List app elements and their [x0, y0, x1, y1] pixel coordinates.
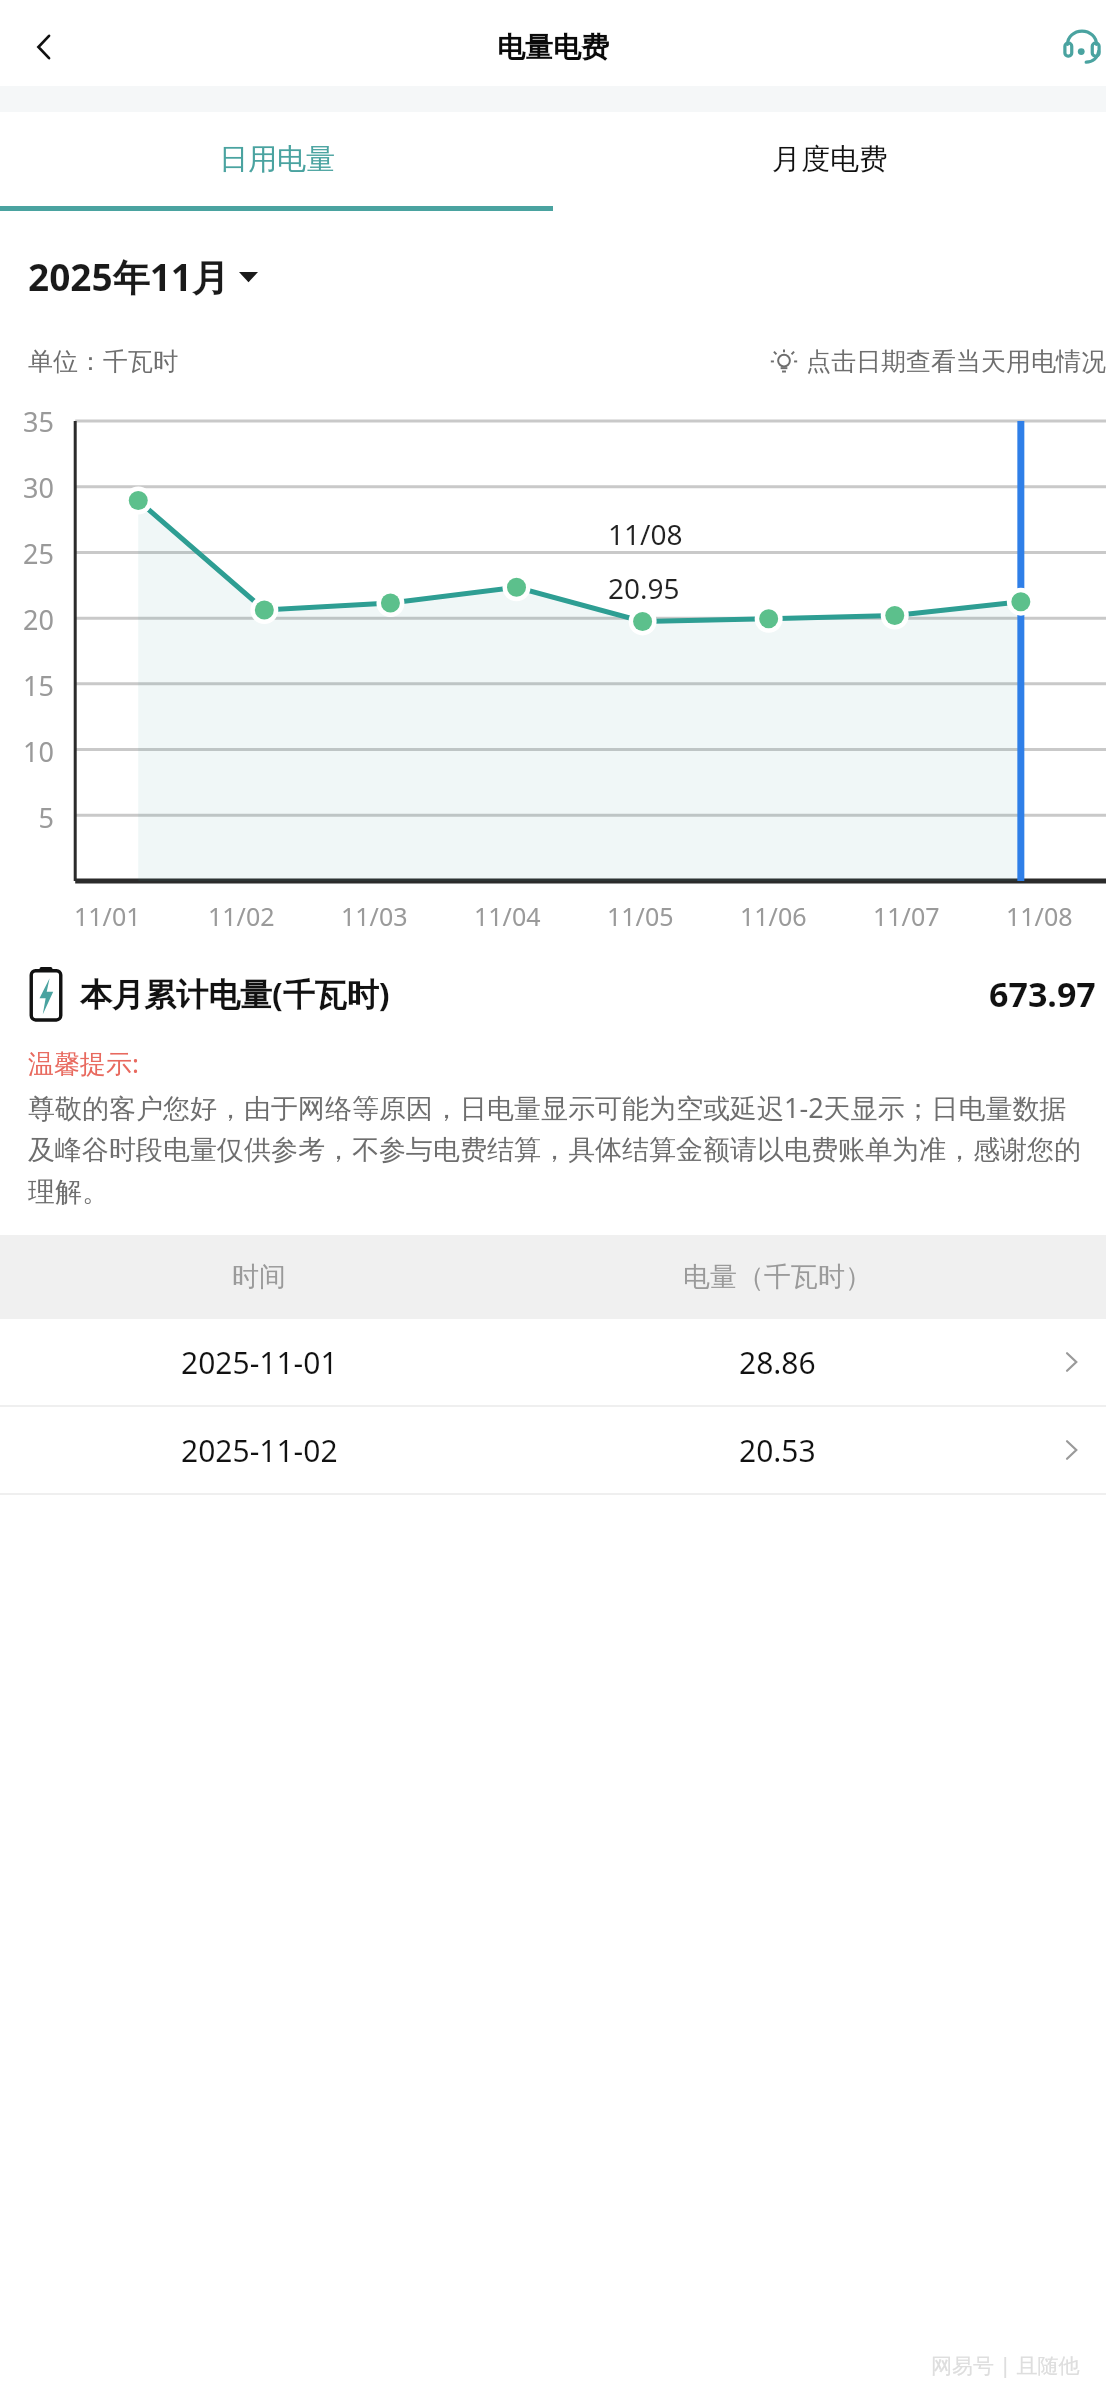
button[interactable]: 2025-11-01 [0, 1319, 1106, 1405]
staticText: 673.97 [989, 971, 1096, 1017]
staticText: 15 [0, 667, 54, 704]
staticText: 2025年11月 [28, 251, 229, 302]
staticText: 11/02 [208, 899, 275, 933]
staticText: 20 [0, 601, 54, 638]
staticText: 日用电量 [219, 141, 335, 178]
staticText: 月度电费 [772, 141, 888, 178]
button[interactable]: 2025年11月 [28, 251, 258, 302]
button[interactable]: 2025-11-02 [0, 1407, 1106, 1493]
button[interactable]: Customer service [1050, 15, 1106, 79]
button[interactable]: 日用电量 [0, 112, 553, 206]
staticText: 28.86 [739, 1342, 816, 1383]
staticText: 电量（千瓦时） [683, 1260, 872, 1294]
staticText: 20.95 [608, 569, 680, 607]
staticText: 11/08 [1006, 899, 1073, 933]
staticText: 2025-11-02 [181, 1430, 338, 1471]
button[interactable]: 月度电费 [553, 112, 1106, 206]
staticText: 本月累计电量(千瓦时) [80, 972, 390, 1016]
staticText: 11/05 [607, 899, 674, 933]
staticText: 11/06 [740, 899, 807, 933]
button[interactable]: Back [16, 19, 72, 75]
staticText: 时间 [232, 1260, 286, 1294]
staticText: 25 [0, 535, 54, 572]
staticText: 网易号 | 且随他 [931, 2351, 1080, 2380]
staticText: 电量电费 [497, 30, 609, 65]
button[interactable]: 点击日期查看当天用电情况 [770, 346, 1106, 377]
staticText: 5 [0, 799, 54, 836]
staticText: 35 [0, 403, 54, 440]
staticText: 单位：千瓦时 [28, 346, 178, 377]
staticText: 11/07 [873, 899, 940, 933]
staticText: 11/08 [608, 515, 683, 553]
staticText: 尊敬的客户您好，由于网络等原因，日电量显示可能为空或延迟1-2天显示；日电量数据… [28, 1089, 1092, 1209]
staticText: 温馨提示: [28, 1045, 139, 1081]
staticText: 30 [0, 469, 54, 506]
staticText: 10 [0, 733, 54, 770]
staticText: 20.53 [739, 1430, 816, 1471]
staticText: 11/03 [341, 899, 408, 933]
staticText: 2025-11-01 [181, 1342, 338, 1383]
staticText: 11/01 [74, 899, 141, 933]
staticText: 点击日期查看当天用电情况 [806, 346, 1106, 377]
staticText: 11/04 [474, 899, 541, 933]
